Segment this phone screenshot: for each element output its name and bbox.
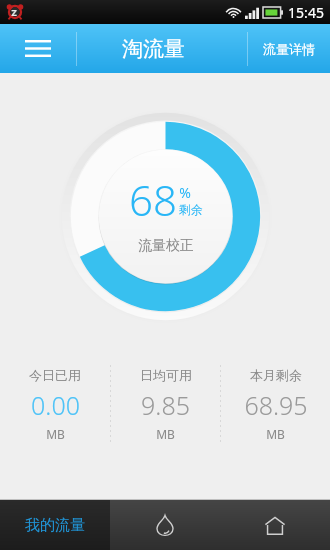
staticText: 我的流量 xyxy=(25,516,85,535)
button[interactable]: 本月剩余 xyxy=(221,358,330,450)
staticText: 68 xyxy=(129,171,177,228)
button[interactable]: 日均可用 xyxy=(111,358,220,450)
staticText: 0.00 xyxy=(31,388,80,422)
staticText: MB xyxy=(46,426,65,442)
button[interactable]: 流量详情 xyxy=(248,24,330,73)
button[interactable]: 今日已用 xyxy=(0,358,110,450)
staticText: 68.95 xyxy=(244,388,308,422)
staticText: MB xyxy=(266,426,285,442)
staticText: 9.85 xyxy=(141,388,190,422)
staticText: 剩余 xyxy=(179,202,203,217)
staticText: % xyxy=(179,183,191,202)
staticText: 日均可用 xyxy=(140,367,192,383)
button[interactable]: Home xyxy=(220,500,330,550)
staticText: 流量详情 xyxy=(263,41,315,57)
staticText: 淘流量 xyxy=(122,36,185,62)
staticText: 今日已用 xyxy=(29,367,81,383)
staticText: MB xyxy=(156,426,175,442)
button[interactable]: 68 xyxy=(58,109,273,324)
staticText: 流量校正 xyxy=(138,237,194,255)
staticText: Z xyxy=(11,6,17,18)
staticText: 15:45 xyxy=(288,3,324,22)
button[interactable]: 我的流量 xyxy=(0,500,110,550)
button[interactable]: Water drop xyxy=(110,500,220,550)
button[interactable]: Menu xyxy=(0,24,76,73)
staticText: 本月剩余 xyxy=(250,367,302,383)
